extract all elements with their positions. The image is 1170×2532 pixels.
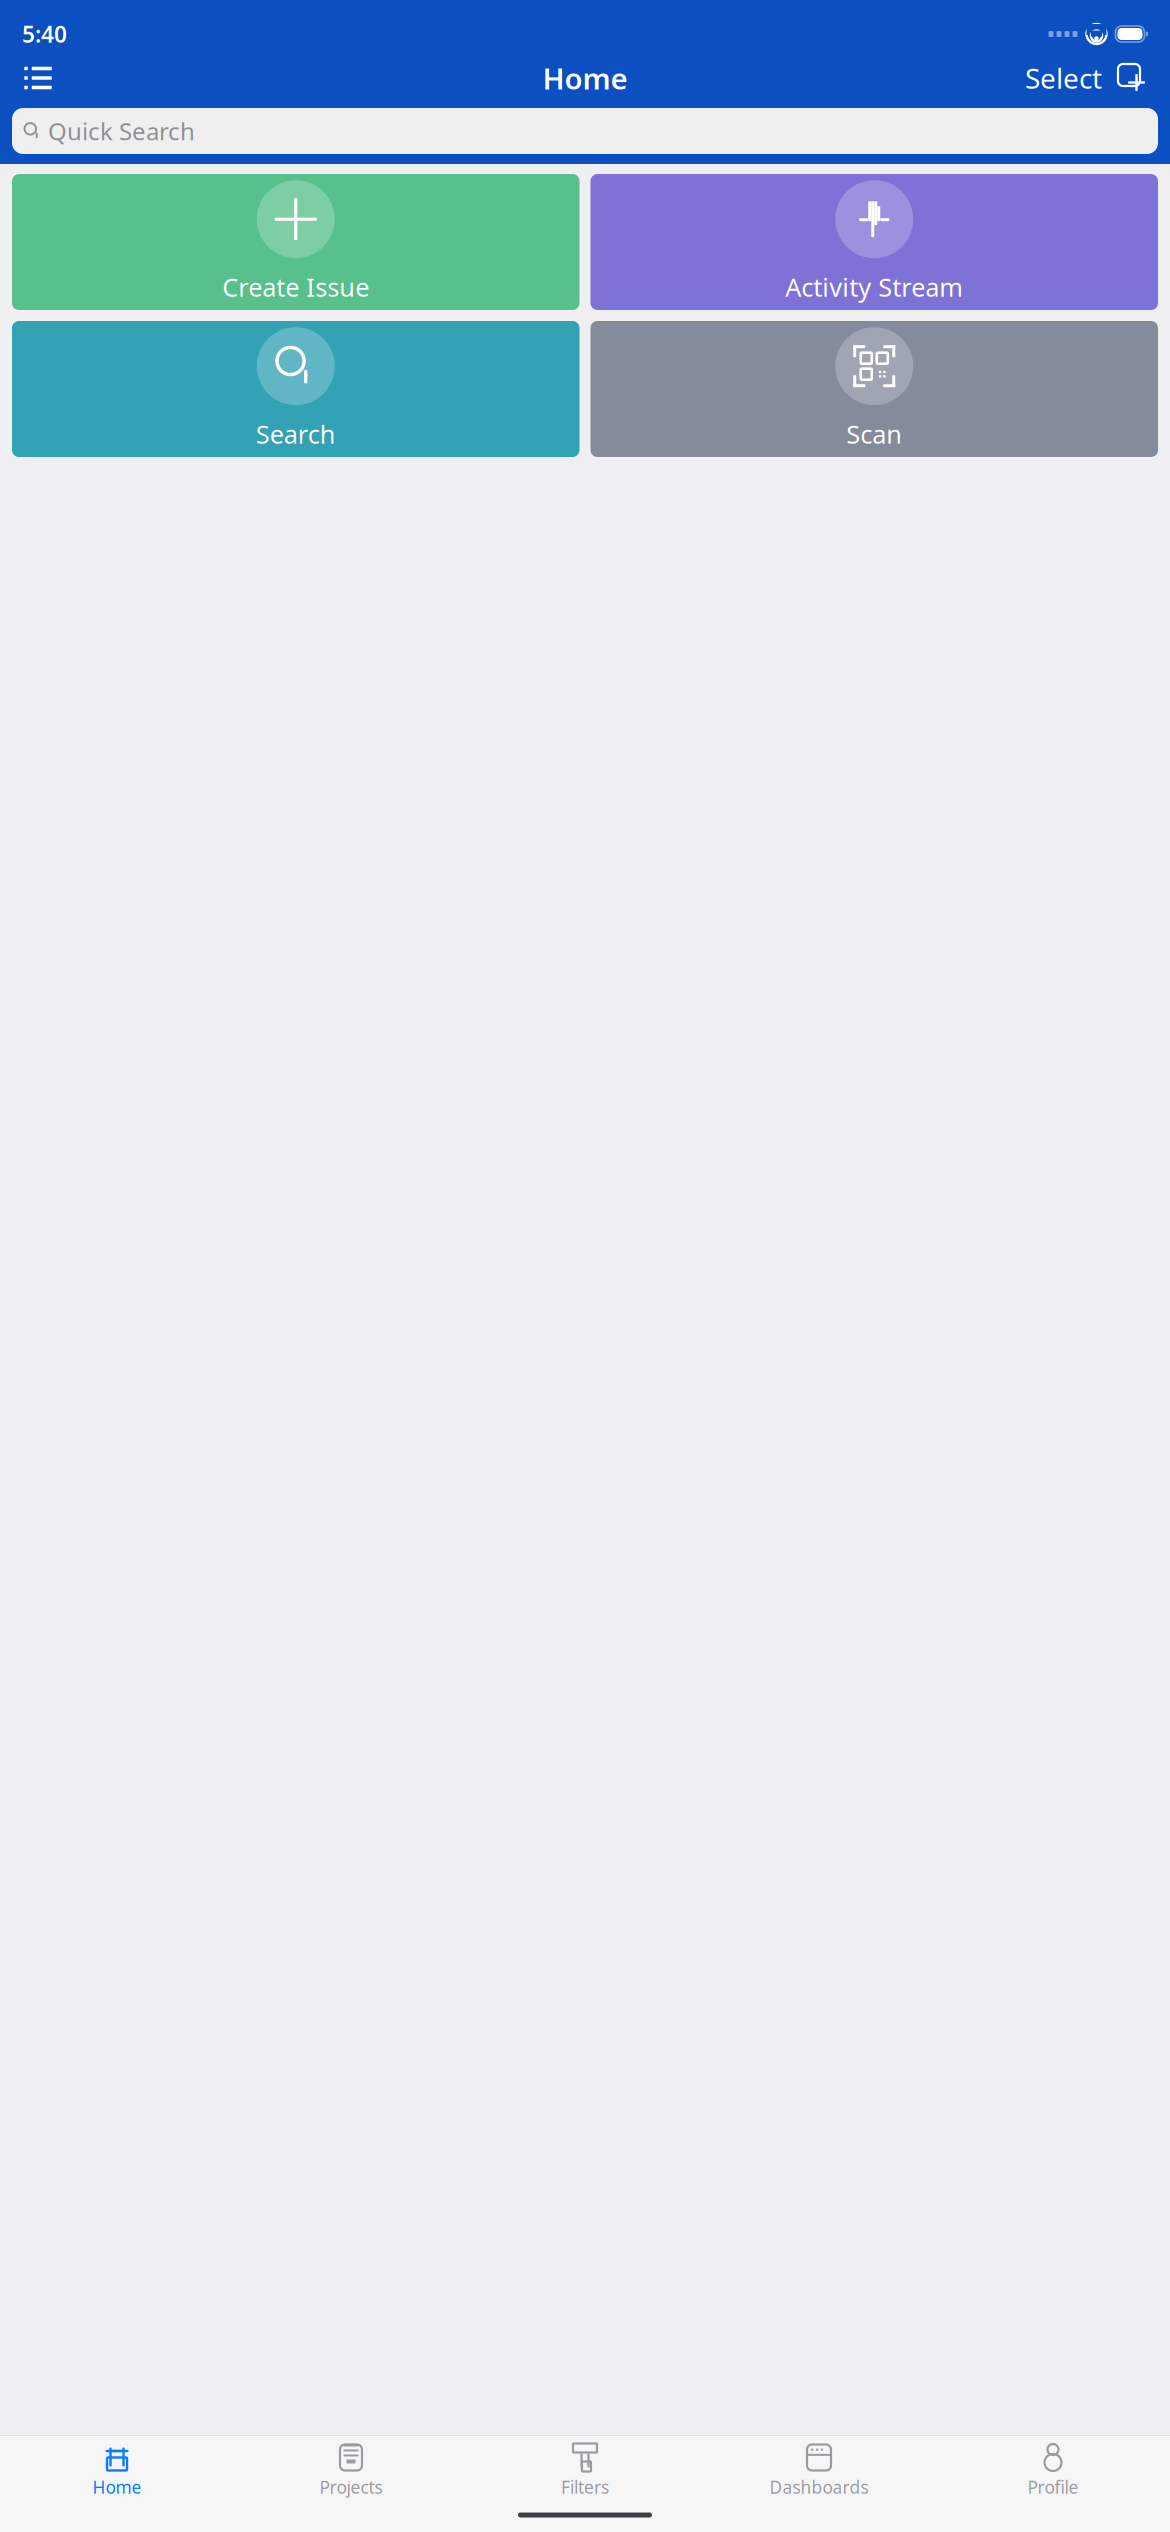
button[interactable]: Filters [468, 2444, 702, 2498]
staticText: Quick Search [48, 115, 195, 147]
staticText: Dashboards [769, 2475, 868, 2498]
staticText: Create Issue [222, 270, 369, 304]
button[interactable]: Menu [14, 56, 62, 100]
staticText: Scan [846, 417, 902, 451]
button[interactable]: Dashboards [702, 2444, 936, 2498]
button[interactable]: Home [0, 2444, 234, 2498]
button[interactable]: Profile [936, 2444, 1170, 2498]
staticText: Home [92, 2475, 141, 2498]
button[interactable]: Create Issue [12, 174, 579, 310]
button[interactable]: Search [12, 321, 579, 457]
button[interactable]: New [1108, 56, 1156, 100]
staticText: Profile [1027, 2475, 1078, 2498]
staticText: 5:40 [22, 19, 67, 49]
staticText: Filters [561, 2475, 609, 2498]
staticText: Activity Stream [785, 270, 963, 304]
button[interactable]: Quick Search [12, 108, 1158, 154]
staticText: Select [1025, 59, 1102, 97]
button[interactable]: Scan [590, 321, 1158, 457]
staticText: Projects [319, 2475, 382, 2498]
staticText: Search [256, 417, 336, 451]
button[interactable]: Activity Stream [590, 174, 1158, 310]
button[interactable]: Projects [234, 2444, 468, 2498]
button[interactable]: Select [1019, 56, 1108, 100]
staticText: Home [542, 58, 627, 97]
